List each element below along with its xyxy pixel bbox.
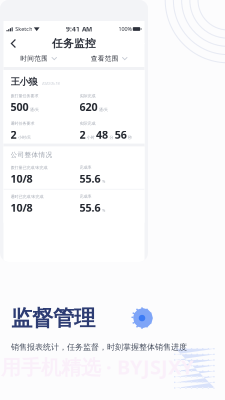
staticText: 小时/天 [18,134,31,140]
staticText: 55.6 [79,200,100,215]
staticText: 100% [118,25,131,33]
staticText: 小时 [87,135,95,140]
staticText: 查看范围 [91,54,119,63]
staticText: 2 [10,127,16,142]
staticText: 通时任务要求 [10,121,34,126]
staticText: 通/天 [30,107,39,112]
button[interactable]: 返回 [3,35,23,51]
staticText: 48 [96,127,108,142]
staticText: 公司整体情况 [10,151,52,159]
staticText: 实际完成 [79,121,95,126]
staticText: 10/8 [10,172,32,186]
staticText: 通时已完成/未完成 [10,194,43,199]
staticText: 王小狼 [10,76,37,87]
staticText: 时间范围 [20,54,48,63]
staticText: 拨打量已完成/未完成 [10,165,47,170]
staticText: 620 [79,100,97,114]
staticText: 分 [109,135,113,140]
staticText: 2 [79,127,85,142]
staticText: 55.6 [79,171,100,186]
staticText: % [102,178,105,184]
staticText: 任务监控 [52,37,96,50]
button[interactable]: 查看范围 [74,50,144,67]
staticText: 监督管理 [11,305,95,331]
staticText: 9:41 AM [66,25,92,33]
staticText: 拨打量任务要求 [10,93,38,98]
staticText: 实际完成 [79,93,95,98]
staticText: Sketch [15,25,32,33]
staticText: % [102,207,105,213]
button[interactable]: 时间范围 [3,50,74,67]
staticText: 56 [115,127,127,142]
staticText: 2020.05.18 [41,81,59,86]
staticText: 通/天 [99,107,108,112]
staticText: 10/8 [10,201,32,215]
staticText: 用手机精选 · BYJSJXY [1,353,194,380]
staticText: 500 [10,100,28,114]
staticText: 完成率 [79,194,91,199]
staticText: 秒 [128,135,132,140]
staticText: 完成率 [79,165,91,170]
staticText: 销售报表统计，任务监督，时刻掌握整体销售进度 [11,342,187,352]
